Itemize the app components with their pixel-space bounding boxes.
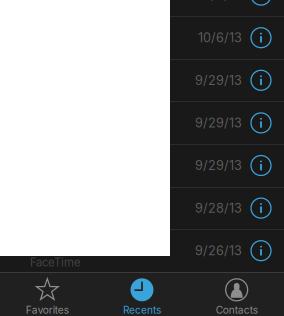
staticText: 9/29/13	[195, 158, 242, 173]
staticText: 9/26/13	[195, 243, 242, 258]
button[interactable]: Favorites	[0, 273, 95, 316]
staticText: 9/29/13	[195, 115, 242, 130]
staticText: Favorites	[26, 304, 69, 316]
button[interactable]: Kate Bell	[0, 59, 284, 102]
staticText: FaceTime	[30, 255, 81, 269]
staticText: Contacts	[216, 304, 258, 316]
button[interactable]: Jon Appleseed	[0, 0, 284, 16]
button[interactable]: Hank Zakroff	[0, 229, 284, 272]
staticText: Recents	[123, 304, 161, 316]
button[interactable]: Recents	[95, 273, 189, 316]
button[interactable]: Anna Haro	[0, 144, 284, 187]
button[interactable]: John Hart	[0, 187, 284, 229]
staticText: 10/8/13	[198, 0, 242, 3]
staticText: Hank Zakroff	[30, 237, 129, 257]
button[interactable]: Maria Ruiz	[0, 16, 284, 59]
staticText: 10/6/13	[198, 30, 242, 45]
button[interactable]: Contacts	[189, 273, 284, 316]
staticText: 9/29/13	[195, 73, 242, 88]
staticText: 9/28/13	[195, 200, 242, 216]
button[interactable]: Daniel Higgins	[0, 102, 284, 144]
